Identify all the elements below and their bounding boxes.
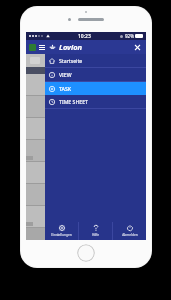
button[interactable]: Hilfe (79, 222, 112, 240)
staticText: Abmelden (122, 233, 138, 237)
staticText: 10:23 (78, 33, 91, 40)
staticText: Hilfe (92, 233, 99, 237)
button[interactable]: TIME SHEET (45, 95, 146, 108)
staticText: TASK (59, 85, 72, 92)
button[interactable]: Close drawer (133, 43, 142, 52)
staticText: VIEW (59, 71, 72, 78)
staticText: Einstellungen (51, 233, 72, 237)
staticText: Lovion (59, 42, 83, 52)
button[interactable]: Einstellungen (45, 222, 78, 240)
staticText: TIME SHEET (59, 98, 88, 105)
button[interactable]: VIEW (45, 68, 146, 81)
staticText: 92% (125, 33, 134, 39)
staticText: Startseite (59, 57, 83, 64)
button[interactable]: Abmelden (113, 222, 146, 240)
button[interactable]: TASK (45, 82, 146, 95)
button[interactable]: Startseite (45, 54, 146, 67)
